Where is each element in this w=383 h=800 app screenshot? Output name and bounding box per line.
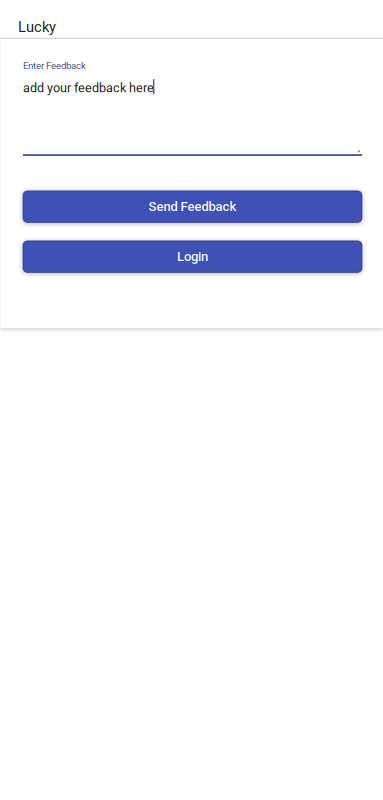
staticText: Send Feedback (148, 199, 236, 214)
staticText: Login (177, 249, 208, 264)
button[interactable]: Login (23, 241, 362, 272)
button[interactable]: Send Feedback (23, 191, 362, 222)
staticText: Enter Feedback (23, 60, 86, 71)
staticText: add your feedback here (23, 80, 154, 95)
staticText: Lucky (18, 18, 56, 36)
button[interactable]: Enter Feedback (23, 60, 362, 156)
